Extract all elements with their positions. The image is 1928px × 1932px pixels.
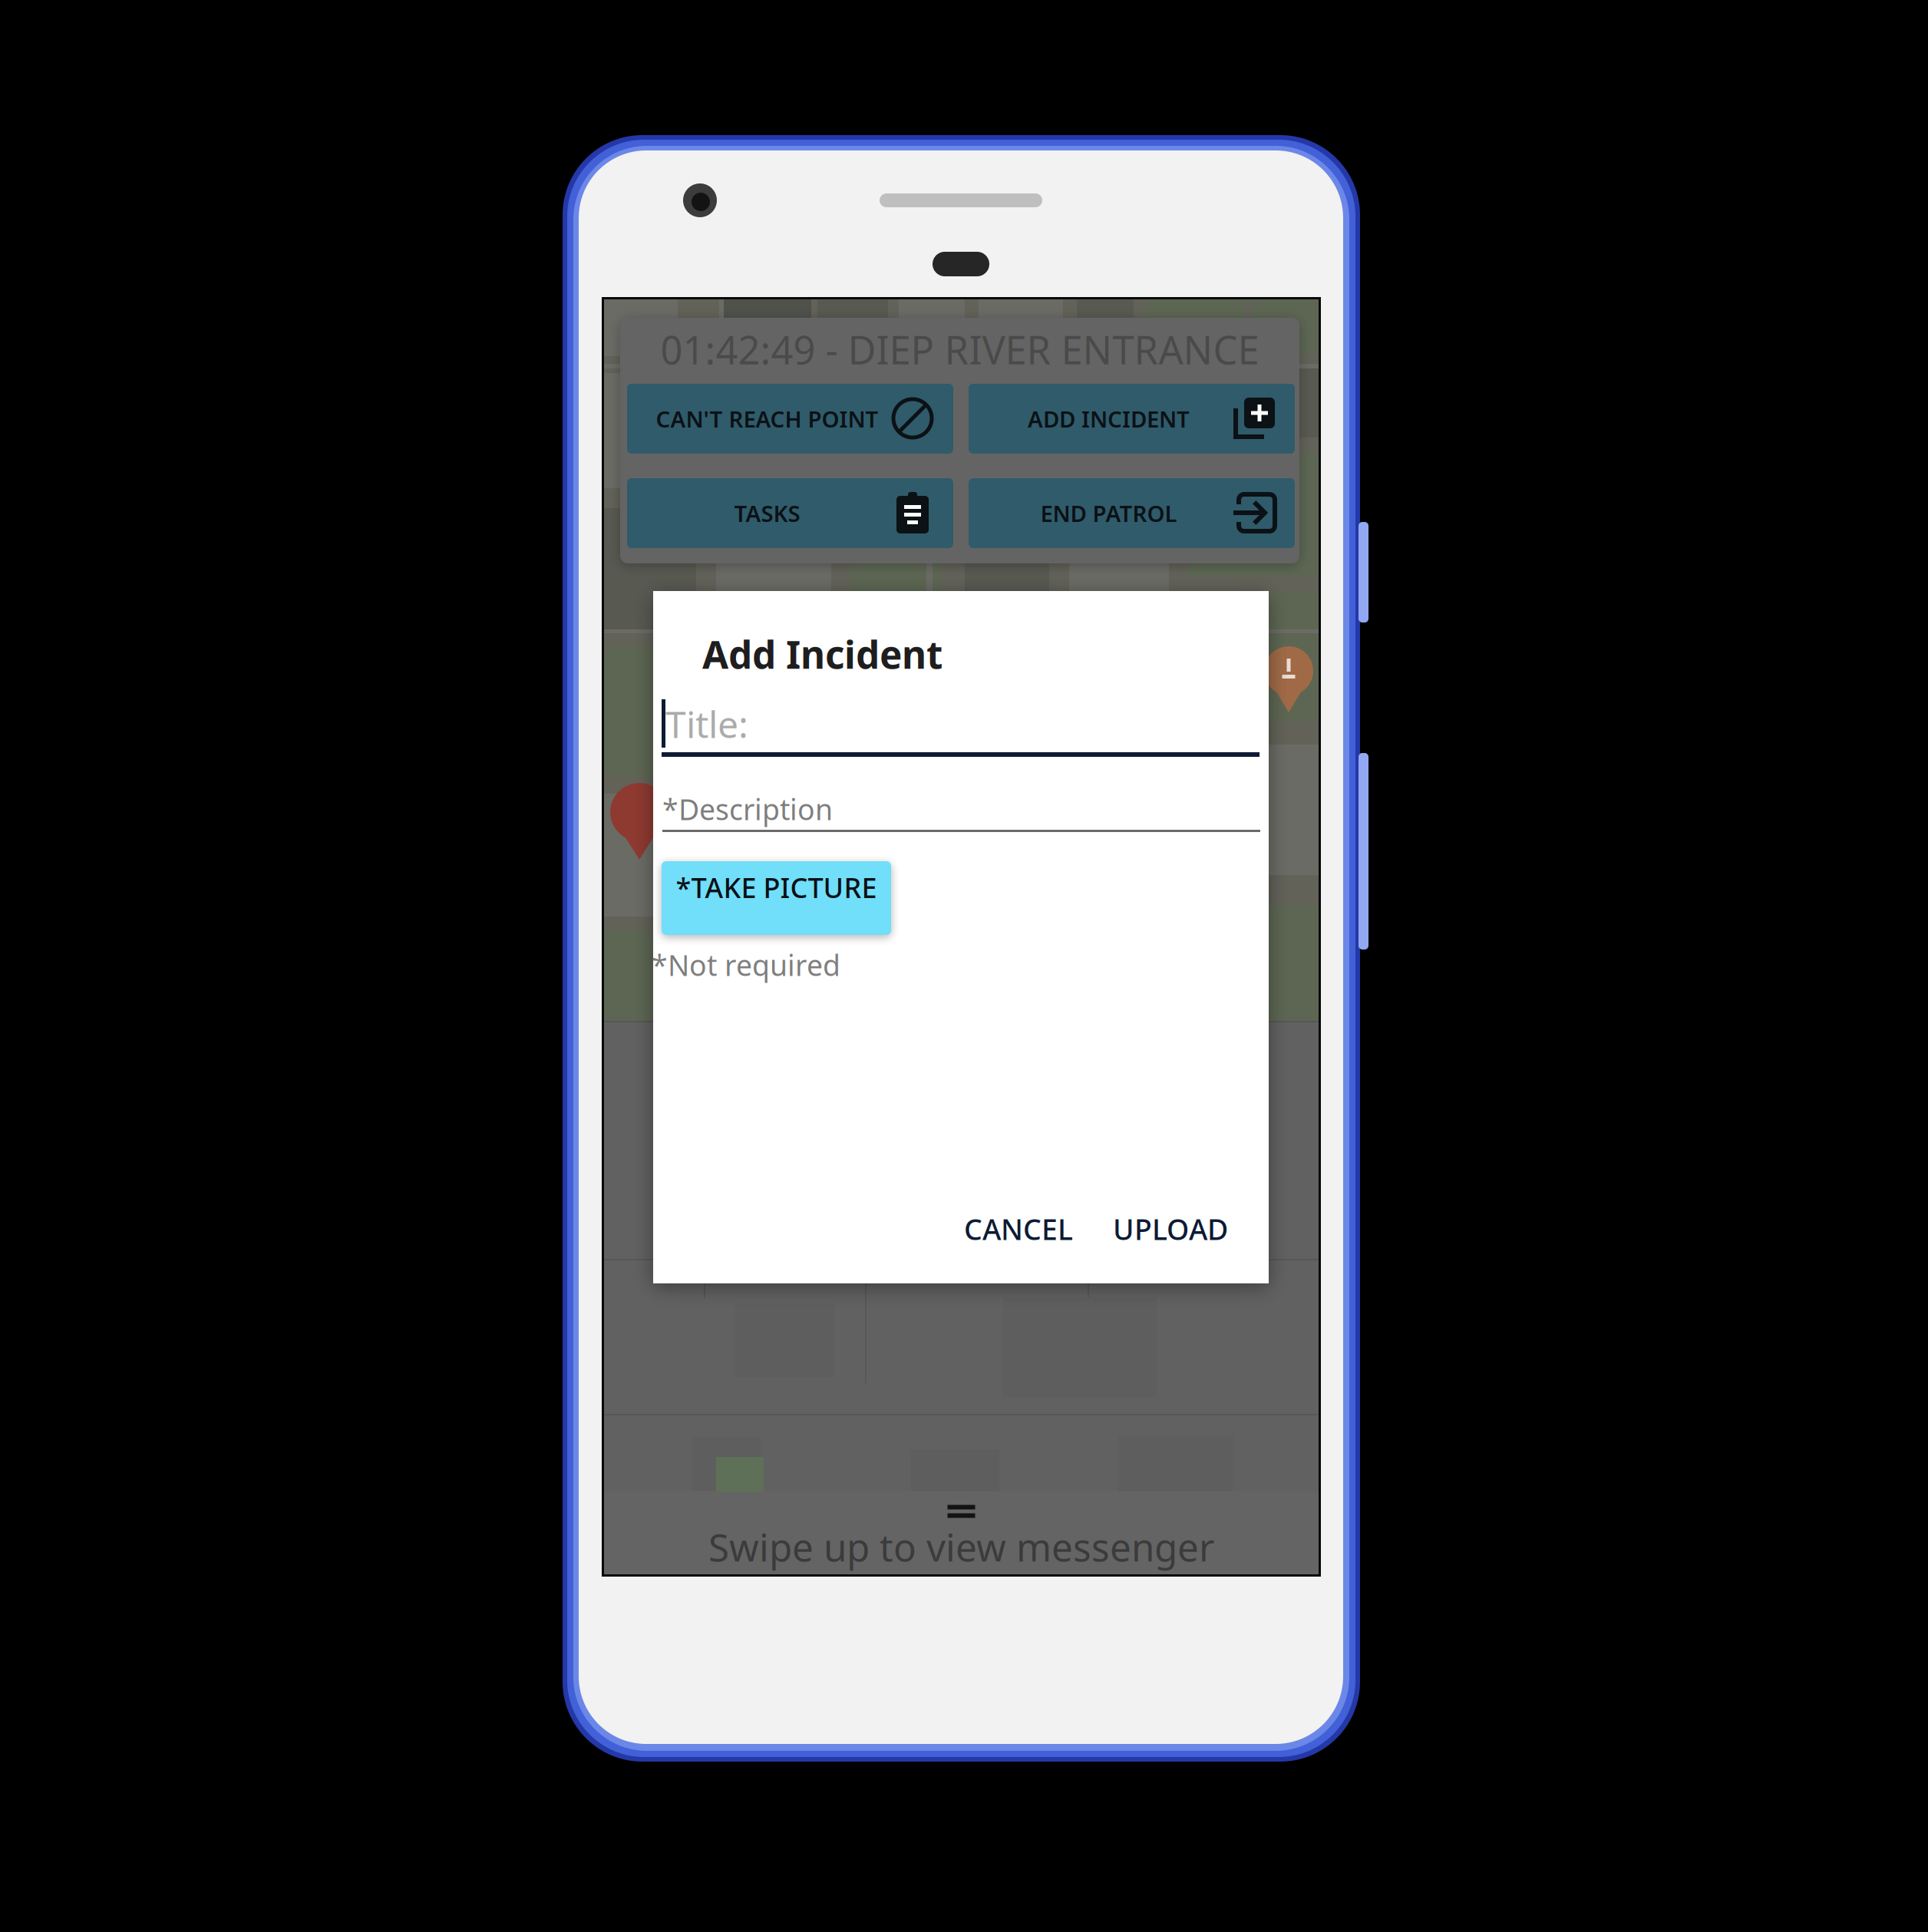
button[interactable]: *TAKE PICTURE: [662, 861, 891, 935]
staticText: *TAKE PICTURE: [676, 869, 877, 906]
staticText: ADD INCIDENT: [1028, 404, 1190, 434]
staticText: UPLOAD: [1113, 1210, 1228, 1248]
button[interactable]: ADD INCIDENT: [969, 384, 1295, 454]
staticText: Title:: [665, 699, 748, 748]
staticText: *Description: [662, 790, 833, 828]
button[interactable]: CAN'T REACH POINT: [627, 384, 953, 454]
staticText: CANCEL: [964, 1210, 1073, 1248]
staticText: 01:42:49 - DIEP RIVER ENTRANCE: [660, 323, 1259, 375]
button[interactable]: TASKS: [627, 478, 953, 548]
staticText: END PATROL: [1040, 498, 1177, 528]
staticText: CAN'T REACH POINT: [656, 404, 878, 434]
button[interactable]: END PATROL: [969, 478, 1295, 548]
staticText: TASKS: [734, 498, 800, 528]
staticText: Add Incident: [702, 629, 943, 679]
staticText: *Not required: [652, 946, 840, 984]
button[interactable]: UPLOAD: [1109, 1209, 1232, 1249]
button[interactable]: CANCEL: [957, 1209, 1080, 1249]
button[interactable]: Swipe up to view messenger: [604, 1491, 1319, 1574]
staticText: Swipe up to view messenger: [708, 1521, 1214, 1572]
